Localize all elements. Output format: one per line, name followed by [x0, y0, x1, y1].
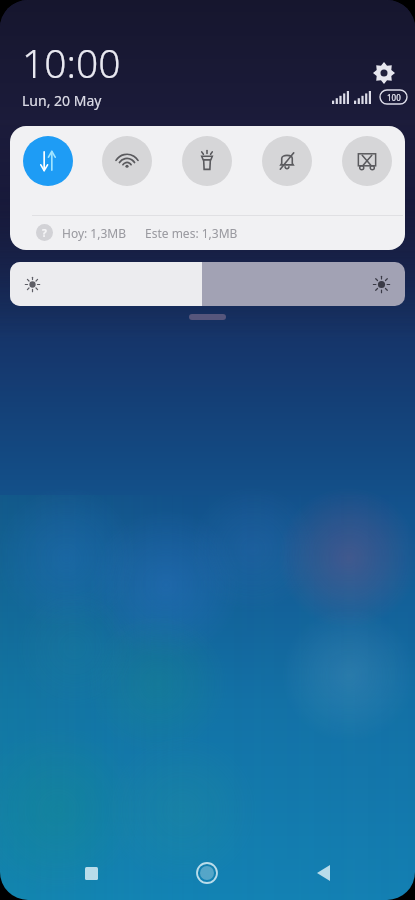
button[interactable]: Back	[299, 849, 347, 897]
staticText: 10:00	[22, 36, 121, 89]
staticText: Este mes: 1,3MB	[145, 225, 238, 241]
staticText: Hoy: 1,3MB	[62, 225, 126, 241]
staticText: 100	[387, 92, 401, 103]
button[interactable]: Settings	[367, 56, 401, 90]
button[interactable]: Mobile data	[23, 136, 73, 186]
button[interactable]: Brightness	[10, 262, 405, 306]
button[interactable]	[189, 314, 226, 320]
button[interactable]: Wi-Fi	[102, 136, 152, 186]
button[interactable]: Screenshot	[342, 136, 392, 186]
staticText: ?	[42, 226, 47, 240]
button[interactable]: Recents	[67, 849, 115, 897]
button[interactable]: Silent mode	[262, 136, 312, 186]
button[interactable]: ?	[36, 224, 238, 241]
staticText: Lun, 20 May	[22, 91, 102, 110]
button[interactable]: Home	[183, 849, 231, 897]
button[interactable]: Flashlight	[182, 136, 232, 186]
